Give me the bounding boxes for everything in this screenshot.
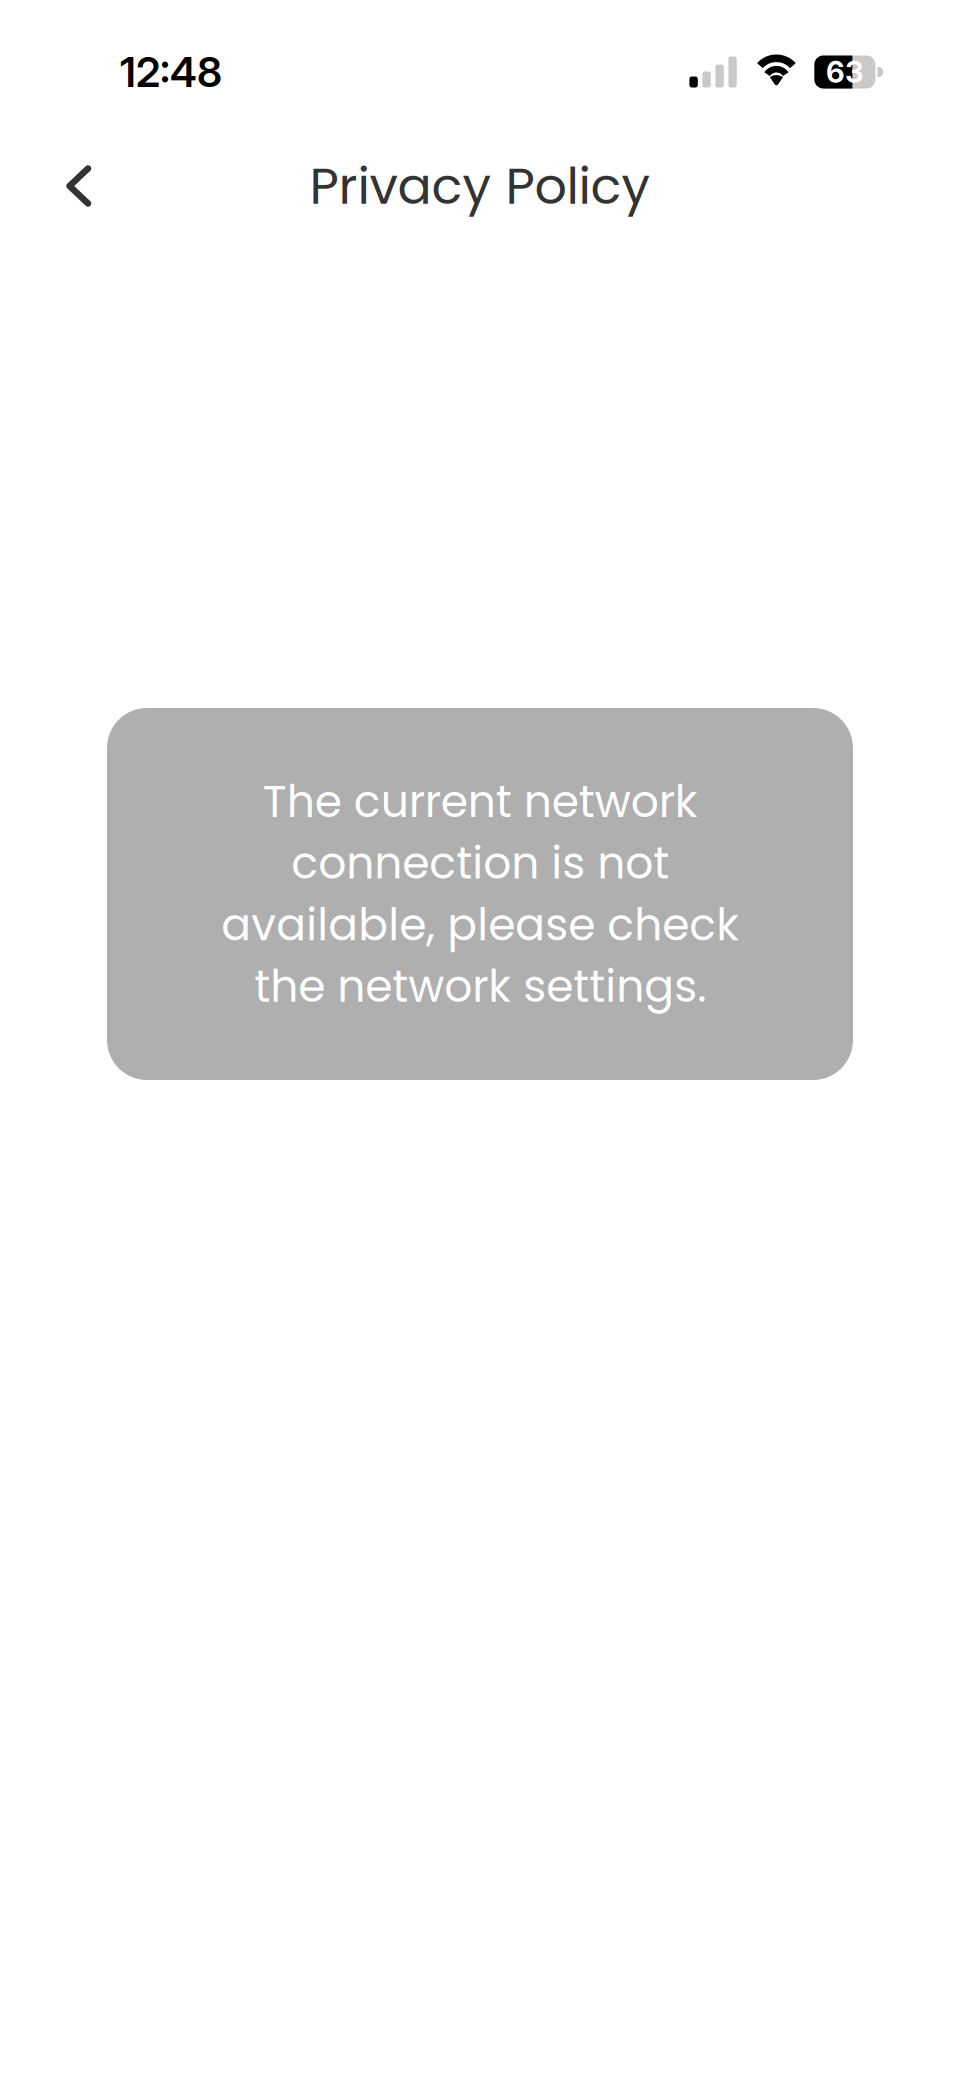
button[interactable]: Back bbox=[27, 138, 131, 234]
staticText: Privacy Policy bbox=[309, 150, 650, 221]
staticText: The current network connection is not av… bbox=[221, 771, 739, 1017]
staticText: 12:48 bbox=[120, 47, 222, 97]
staticText: 63 bbox=[826, 54, 864, 90]
